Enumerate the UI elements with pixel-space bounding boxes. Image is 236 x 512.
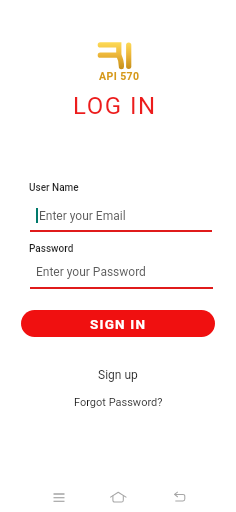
button[interactable]: Enter your Email	[30, 202, 212, 229]
staticText: SIGN IN	[90, 316, 147, 332]
button[interactable]: Enter your Password	[30, 259, 213, 285]
staticText: User Name	[29, 182, 79, 194]
button[interactable]	[157, 484, 236, 512]
button[interactable]	[0, 484, 78, 512]
button[interactable]: Forgot Password?	[72, 394, 165, 411]
staticText: Password	[29, 243, 74, 255]
staticText: LOG IN	[73, 92, 157, 120]
staticText: API 570	[99, 70, 140, 82]
button[interactable]: Sign up	[96, 366, 140, 384]
button[interactable]	[78, 484, 157, 512]
staticText: Enter your Email	[39, 209, 126, 223]
staticText: Enter your Password	[36, 265, 146, 279]
button[interactable]: SIGN IN	[21, 310, 215, 337]
